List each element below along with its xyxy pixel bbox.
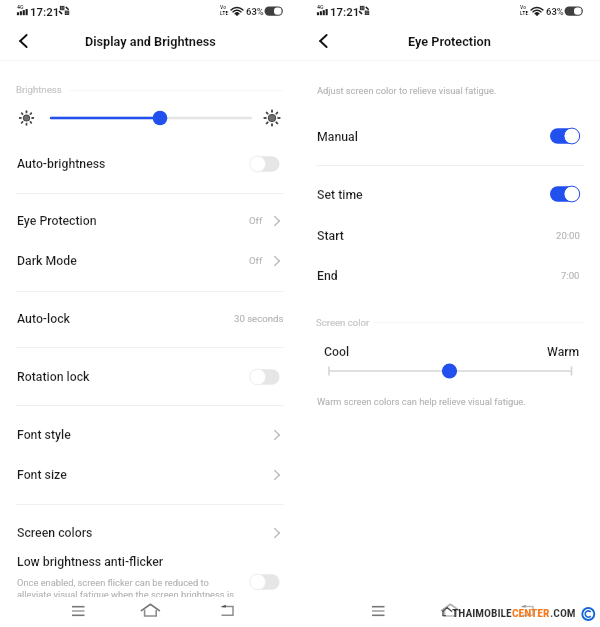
- button[interactable]: [0, 299, 300, 338]
- button[interactable]: [0, 241, 300, 280]
- staticText: Brightness: [16, 84, 62, 95]
- staticText: Off: [249, 215, 263, 226]
- button[interactable]: [0, 201, 300, 240]
- staticText: Vo: [220, 4, 226, 10]
- staticText: LTE: [520, 10, 529, 16]
- button[interactable]: [300, 215, 600, 255]
- staticText: Auto-brightness: [17, 157, 106, 171]
- staticText: Font style: [17, 428, 71, 442]
- staticText: Rotation lock: [17, 370, 90, 384]
- button[interactable]: [0, 455, 300, 494]
- staticText: Manual: [317, 130, 358, 144]
- button[interactable]: Home: [138, 600, 164, 624]
- staticText: Cool: [324, 345, 350, 359]
- staticText: CENTER: [512, 606, 550, 619]
- button[interactable]: Back: [309, 27, 337, 55]
- staticText: Screen color: [316, 317, 370, 328]
- staticText: Eye Protection: [17, 214, 97, 228]
- staticText: Dark Mode: [17, 254, 77, 268]
- button[interactable]: [300, 175, 600, 214]
- staticText: 17:21: [330, 5, 360, 18]
- staticText: Font size: [17, 468, 67, 482]
- button[interactable]: Auto-brightness: [248, 153, 284, 175]
- staticText: Eye Protection: [408, 34, 491, 49]
- button[interactable]: Recent apps: [64, 600, 94, 624]
- staticText: 20:00: [556, 230, 580, 241]
- staticText: 63%: [546, 6, 564, 17]
- button[interactable]: [300, 256, 600, 295]
- staticText: Set time: [317, 188, 363, 202]
- button[interactable]: Back: [212, 600, 240, 624]
- button[interactable]: Rotation lock: [248, 366, 284, 388]
- staticText: Start: [317, 229, 344, 243]
- button[interactable]: [300, 116, 600, 156]
- staticText: Screen colors: [17, 526, 93, 540]
- staticText: 4G: [317, 4, 324, 10]
- button[interactable]: Manual: [548, 125, 584, 147]
- button[interactable]: Recent apps: [364, 600, 394, 624]
- staticText: alleviate visual fatigue when the screen…: [17, 589, 234, 600]
- staticText: LTE: [220, 10, 229, 16]
- button[interactable]: Back: [9, 27, 37, 55]
- staticText: Low brightness anti-flicker: [17, 555, 164, 569]
- button[interactable]: [0, 357, 300, 396]
- staticText: 4G: [17, 4, 24, 10]
- staticText: THAIMOBILE: [452, 606, 512, 619]
- staticText: 30 seconds: [234, 313, 284, 324]
- button[interactable]: [0, 553, 300, 596]
- staticText: Warm: [547, 345, 580, 359]
- staticText: Adjust screen color to relieve visual fa…: [317, 85, 497, 96]
- staticText: Auto-lock: [17, 312, 70, 326]
- button[interactable]: [0, 415, 300, 454]
- staticText: .COM: [550, 606, 576, 619]
- button[interactable]: Back: [512, 600, 540, 624]
- staticText: Vo: [520, 4, 526, 10]
- staticText: Warm screen colors can help relieve visu…: [317, 396, 526, 407]
- staticText: Display and Brightness: [85, 34, 216, 49]
- button[interactable]: Low brightness anti-flicker: [248, 571, 284, 593]
- button[interactable]: [0, 143, 300, 185]
- staticText: 7:00: [561, 270, 580, 281]
- staticText: Once enabled, screen flicker can be redu…: [17, 577, 209, 588]
- staticText: 63%: [246, 6, 264, 17]
- staticText: End: [317, 269, 338, 283]
- button[interactable]: Home: [438, 600, 464, 624]
- staticText: 17:21: [30, 5, 60, 18]
- button[interactable]: [0, 513, 300, 552]
- staticText: Off: [249, 255, 263, 266]
- button[interactable]: Set time: [548, 183, 584, 205]
